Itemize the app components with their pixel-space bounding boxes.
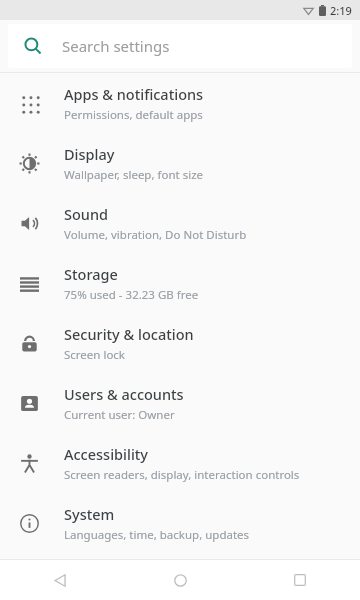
staticText: System	[64, 504, 115, 524]
other: Users and accounts	[20, 394, 39, 413]
staticText: Wallpaper, sleep, font size	[64, 167, 204, 183]
button[interactable]: Security	[0, 313, 360, 373]
staticText: Accessibility	[64, 444, 149, 464]
staticText: 75% used - 32.23 GB free	[64, 287, 199, 303]
button[interactable]: System	[0, 493, 360, 553]
staticText: Security & location	[64, 324, 194, 344]
other: Display	[20, 154, 39, 173]
button[interactable]: Recents	[240, 560, 360, 600]
button[interactable]: Accessibility	[0, 433, 360, 493]
other: Accessibility	[20, 454, 39, 473]
button[interactable]: Storage	[0, 253, 360, 313]
button[interactable]: Sound	[0, 193, 360, 253]
staticText: Sound	[64, 204, 109, 224]
staticText: Search settings	[62, 36, 170, 56]
staticText: Screen readers, display, interaction con…	[64, 467, 300, 483]
other: Security	[20, 334, 39, 353]
button[interactable]: Home	[120, 560, 240, 600]
button[interactable]: Display	[0, 133, 360, 193]
other: Apps	[20, 94, 39, 113]
staticText: Current user: Owner	[64, 407, 175, 423]
other: System	[20, 514, 39, 533]
staticText: Apps & notifications	[64, 84, 204, 104]
button[interactable]: Back	[0, 560, 120, 600]
staticText: Display	[64, 144, 115, 164]
staticText: Storage	[64, 264, 118, 284]
staticText: Volume, vibration, Do Not Disturb	[64, 227, 247, 243]
staticText: Languages, time, backup, updates	[64, 527, 250, 543]
staticText: Users & accounts	[64, 384, 184, 404]
other: Storage	[20, 274, 39, 293]
other: Sound	[20, 214, 39, 233]
staticText: 2:19	[330, 3, 352, 18]
staticText: Screen lock	[64, 347, 126, 363]
button[interactable]: Search settings	[8, 24, 352, 68]
button[interactable]: Apps	[0, 73, 360, 133]
button[interactable]: Users and accounts	[0, 373, 360, 433]
staticText: Permissions, default apps	[64, 107, 203, 123]
